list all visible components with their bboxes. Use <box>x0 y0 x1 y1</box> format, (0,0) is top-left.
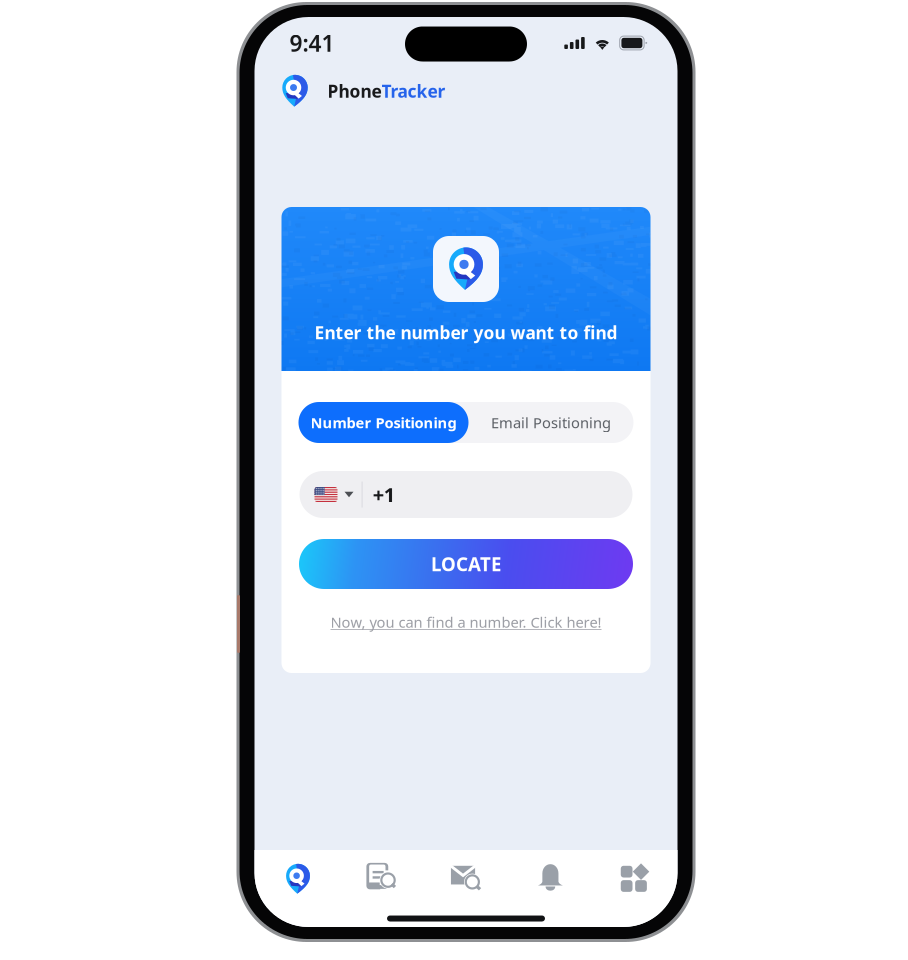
button[interactable]: Number Positioning <box>298 402 468 443</box>
staticText: +1 <box>373 481 395 508</box>
button[interactable]: Lookup records <box>340 850 424 902</box>
button[interactable]: LOCATE <box>299 539 633 589</box>
button[interactable]: Now, you can find a number. Click here! <box>330 605 601 639</box>
staticText: LOCATE <box>431 552 501 576</box>
button[interactable]: Notifications <box>508 850 592 902</box>
staticText: Enter the number you want to find <box>314 321 617 344</box>
button[interactable]: More <box>592 850 676 902</box>
button[interactable]: Email search <box>424 850 508 902</box>
staticText: Email Positioning <box>491 413 611 432</box>
staticText: Tracker <box>381 79 445 102</box>
button[interactable]: Email Positioning <box>468 402 633 443</box>
staticText: Phone <box>327 79 381 102</box>
staticText: Number Positioning <box>310 413 456 432</box>
staticText: Now, you can find a number. Click here! <box>330 612 601 632</box>
staticText: 9:41 <box>289 28 334 58</box>
button[interactable]: Locate <box>256 850 340 902</box>
